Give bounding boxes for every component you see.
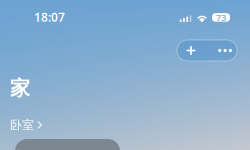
- button[interactable]: Add accessory: [177, 40, 205, 61]
- staticText: 家: [10, 76, 30, 101]
- button[interactable]: 卧室: [0, 101, 42, 132]
- button[interactable]: More options: [205, 40, 237, 61]
- button[interactable]: Accessory: [15, 139, 120, 150]
- staticText: 卧室: [10, 118, 34, 132]
- staticText: 73: [216, 11, 226, 24]
- staticText: 18:07: [34, 9, 65, 25]
